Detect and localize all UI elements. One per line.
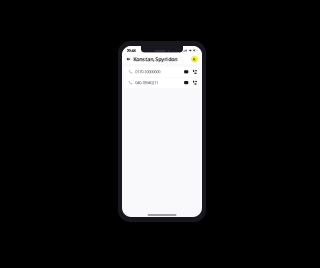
button[interactable]: Call — [191, 78, 199, 87]
button[interactable]: Konstan, Spyridon — [131, 54, 177, 64]
button[interactable]: Back — [125, 55, 131, 64]
staticText: K — [193, 56, 196, 62]
button[interactable]: Contact avatar — [191, 55, 198, 64]
button[interactable]: Send message — [182, 78, 191, 87]
staticText: Konstan, Spyridon — [133, 56, 177, 63]
button[interactable]: Send message — [182, 67, 191, 76]
staticText: 040-78940211 — [135, 80, 158, 85]
staticText: 0170-10000000 — [135, 69, 160, 74]
button[interactable]: Call — [191, 67, 199, 76]
staticText: 09:44 — [126, 48, 135, 53]
